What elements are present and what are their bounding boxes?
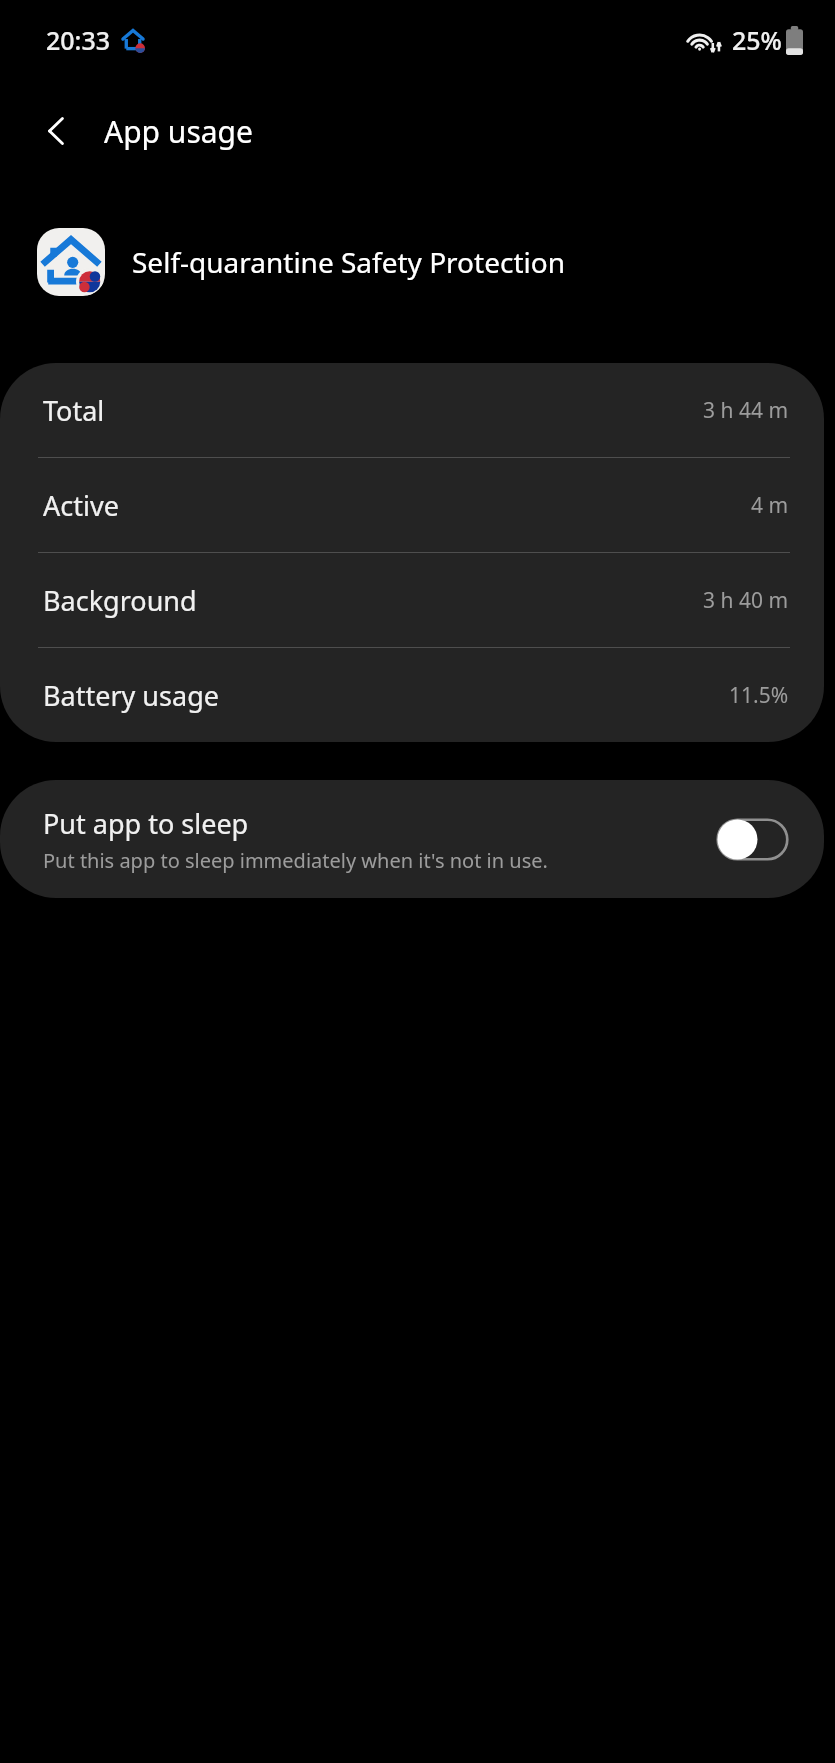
button[interactable]: Background <box>0 553 824 647</box>
staticText: Background <box>43 582 197 619</box>
staticText: Active <box>43 487 119 524</box>
button[interactable]: Battery usage <box>0 648 824 742</box>
button[interactable]: Active <box>0 458 824 552</box>
staticText: 20:33 <box>46 23 111 57</box>
staticText: 11.5% <box>729 681 789 710</box>
button[interactable]: Total <box>0 363 824 457</box>
staticText: 3 h 44 m <box>703 396 789 425</box>
staticText: App usage <box>104 111 253 152</box>
staticText: Self-quarantine Safety Protection <box>132 243 565 281</box>
staticText: Put app to sleep <box>43 805 249 842</box>
staticText: 25% <box>732 23 782 57</box>
staticText: Battery usage <box>43 677 219 714</box>
button[interactable]: Back <box>22 96 92 166</box>
staticText: Put this app to sleep immediately when i… <box>43 847 548 874</box>
staticText: 4 m <box>751 491 789 520</box>
button[interactable]: Put app to sleep toggle <box>716 818 789 861</box>
button[interactable]: Put app to sleep <box>0 780 824 898</box>
staticText: 3 h 40 m <box>703 586 789 615</box>
staticText: Total <box>43 392 105 429</box>
